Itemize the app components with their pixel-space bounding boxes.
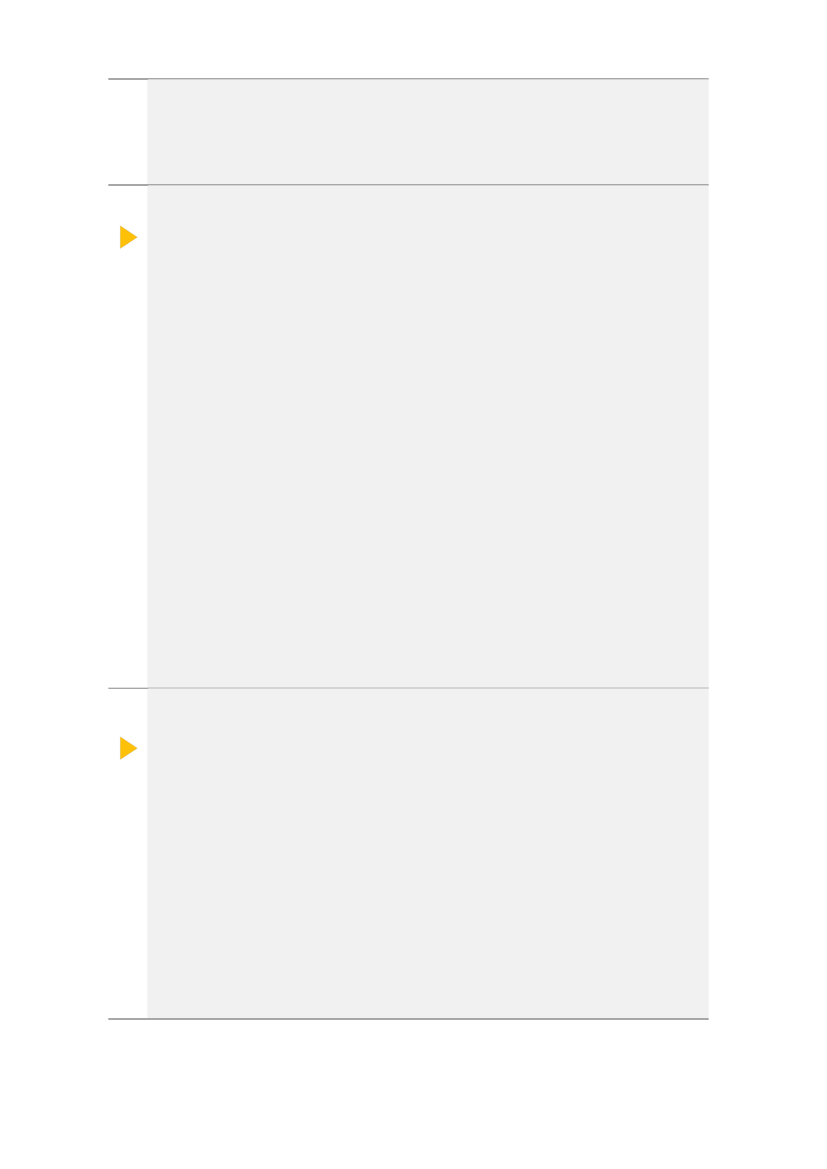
button[interactable] [147,78,708,184]
button[interactable] [147,184,708,688]
button[interactable]: Expand section [114,731,144,763]
button[interactable]: Expand section [114,220,144,252]
